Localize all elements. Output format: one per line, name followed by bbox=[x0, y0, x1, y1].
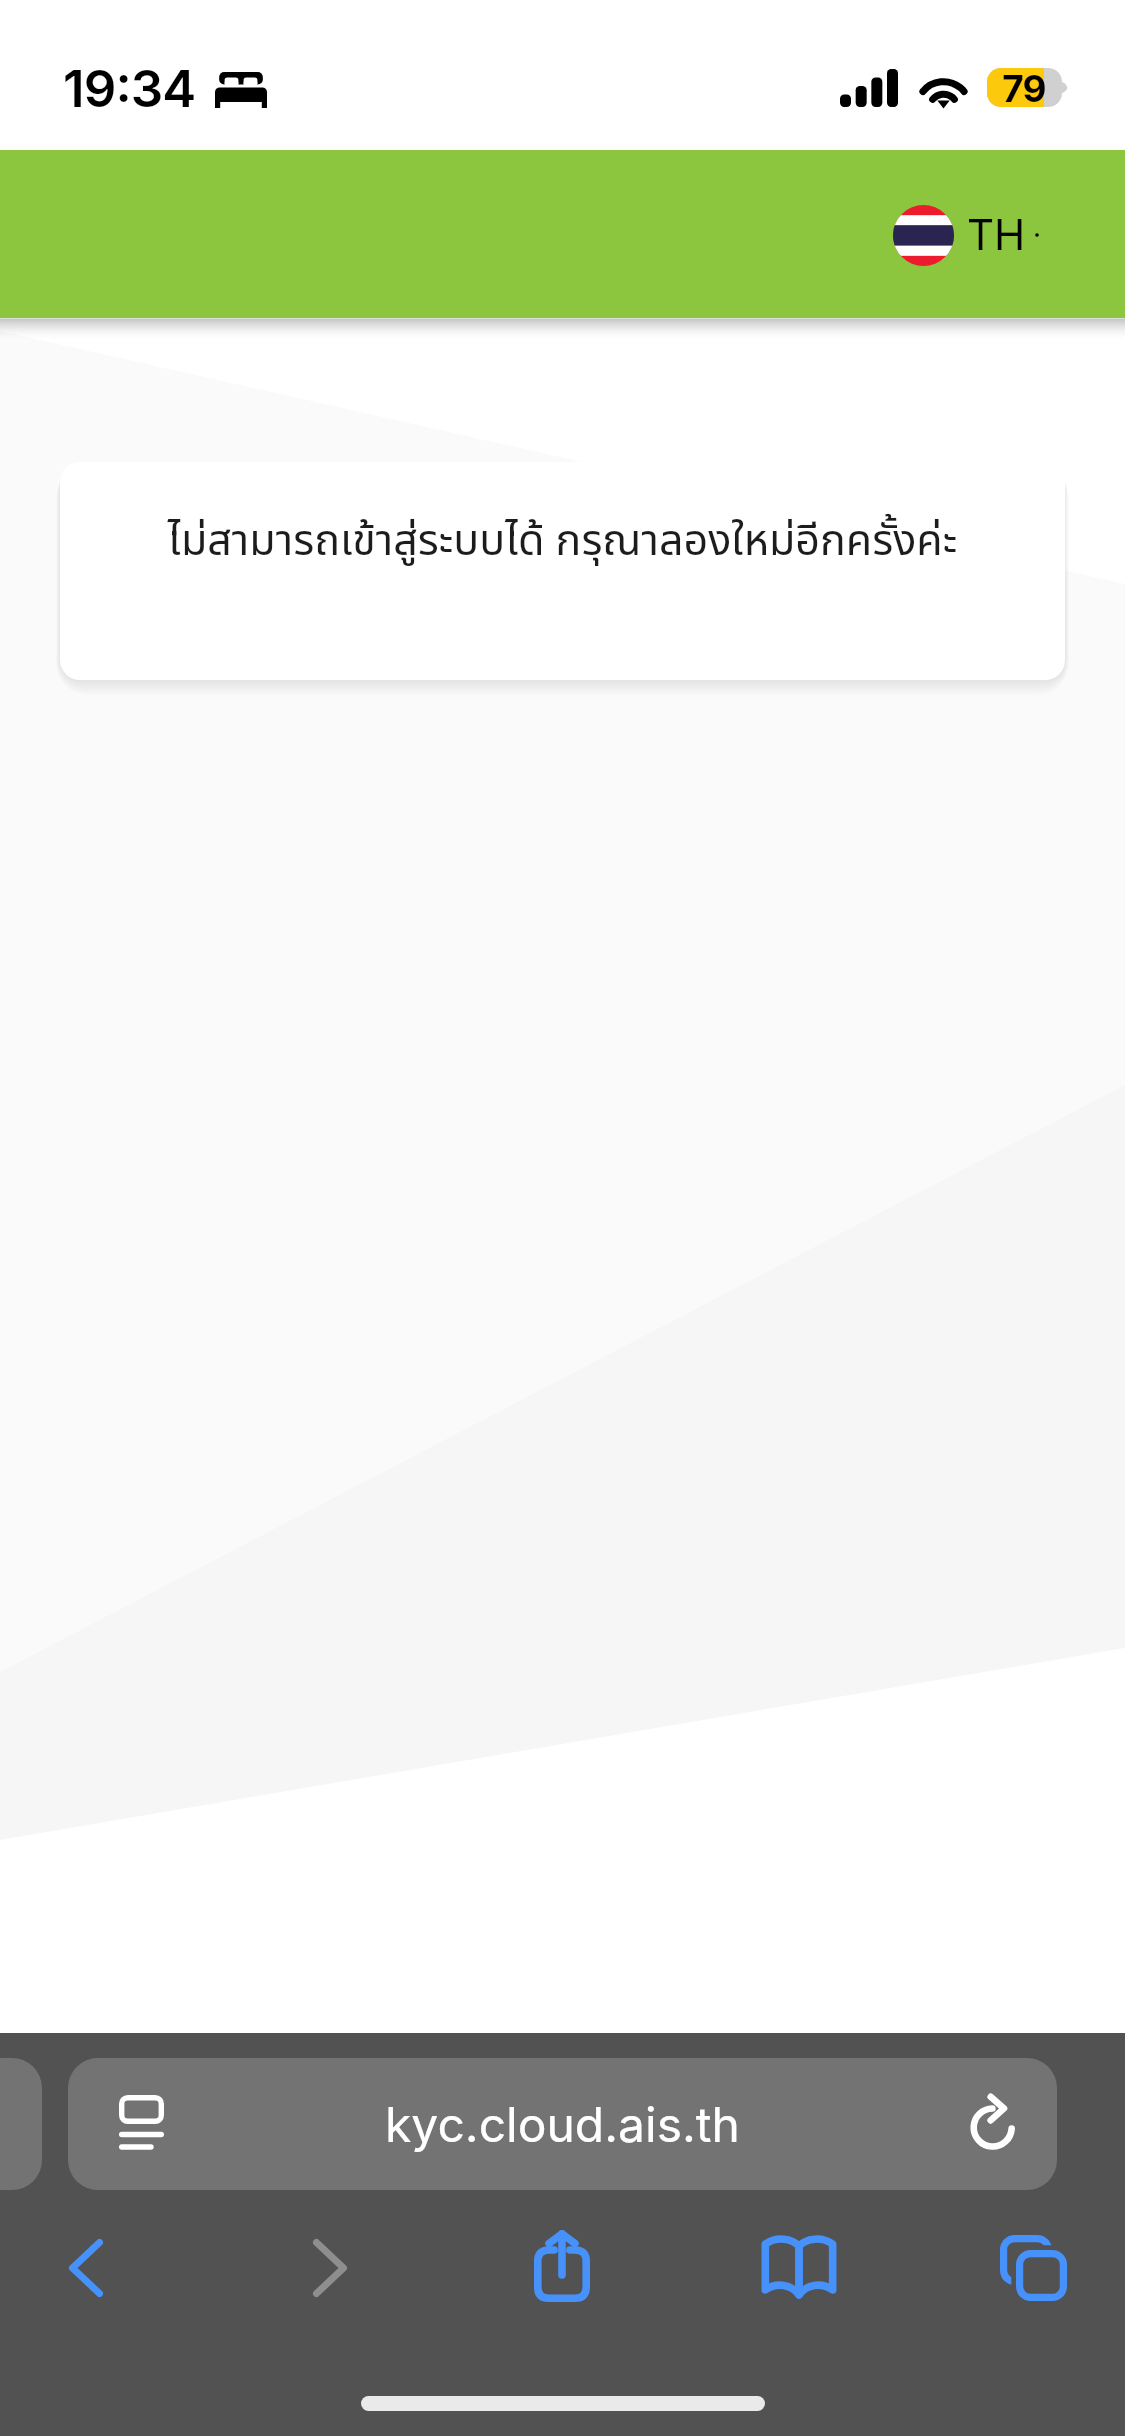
staticText: TH bbox=[967, 209, 1026, 260]
button[interactable]: Bookmarks bbox=[740, 2208, 858, 2326]
staticText: ไม่สามารถเข้าสู่ระบบได้ กรุณาลองใหม่อีกค… bbox=[60, 509, 1065, 574]
other: Page settings bbox=[119, 2095, 165, 2151]
button[interactable]: Share bbox=[503, 2207, 621, 2325]
button[interactable]: Forward bbox=[271, 2209, 389, 2327]
staticText: 19:34 bbox=[63, 58, 196, 120]
staticText: 79 bbox=[995, 66, 1053, 111]
button[interactable]: Tabs bbox=[975, 2209, 1093, 2327]
staticText: kyc.cloud.ais.th bbox=[385, 2095, 740, 2153]
button[interactable]: TH bbox=[893, 205, 1041, 266]
other: Reload bbox=[968, 2092, 1018, 2152]
button[interactable]: Page settings bbox=[68, 2058, 1057, 2190]
button[interactable]: Back bbox=[27, 2209, 145, 2327]
